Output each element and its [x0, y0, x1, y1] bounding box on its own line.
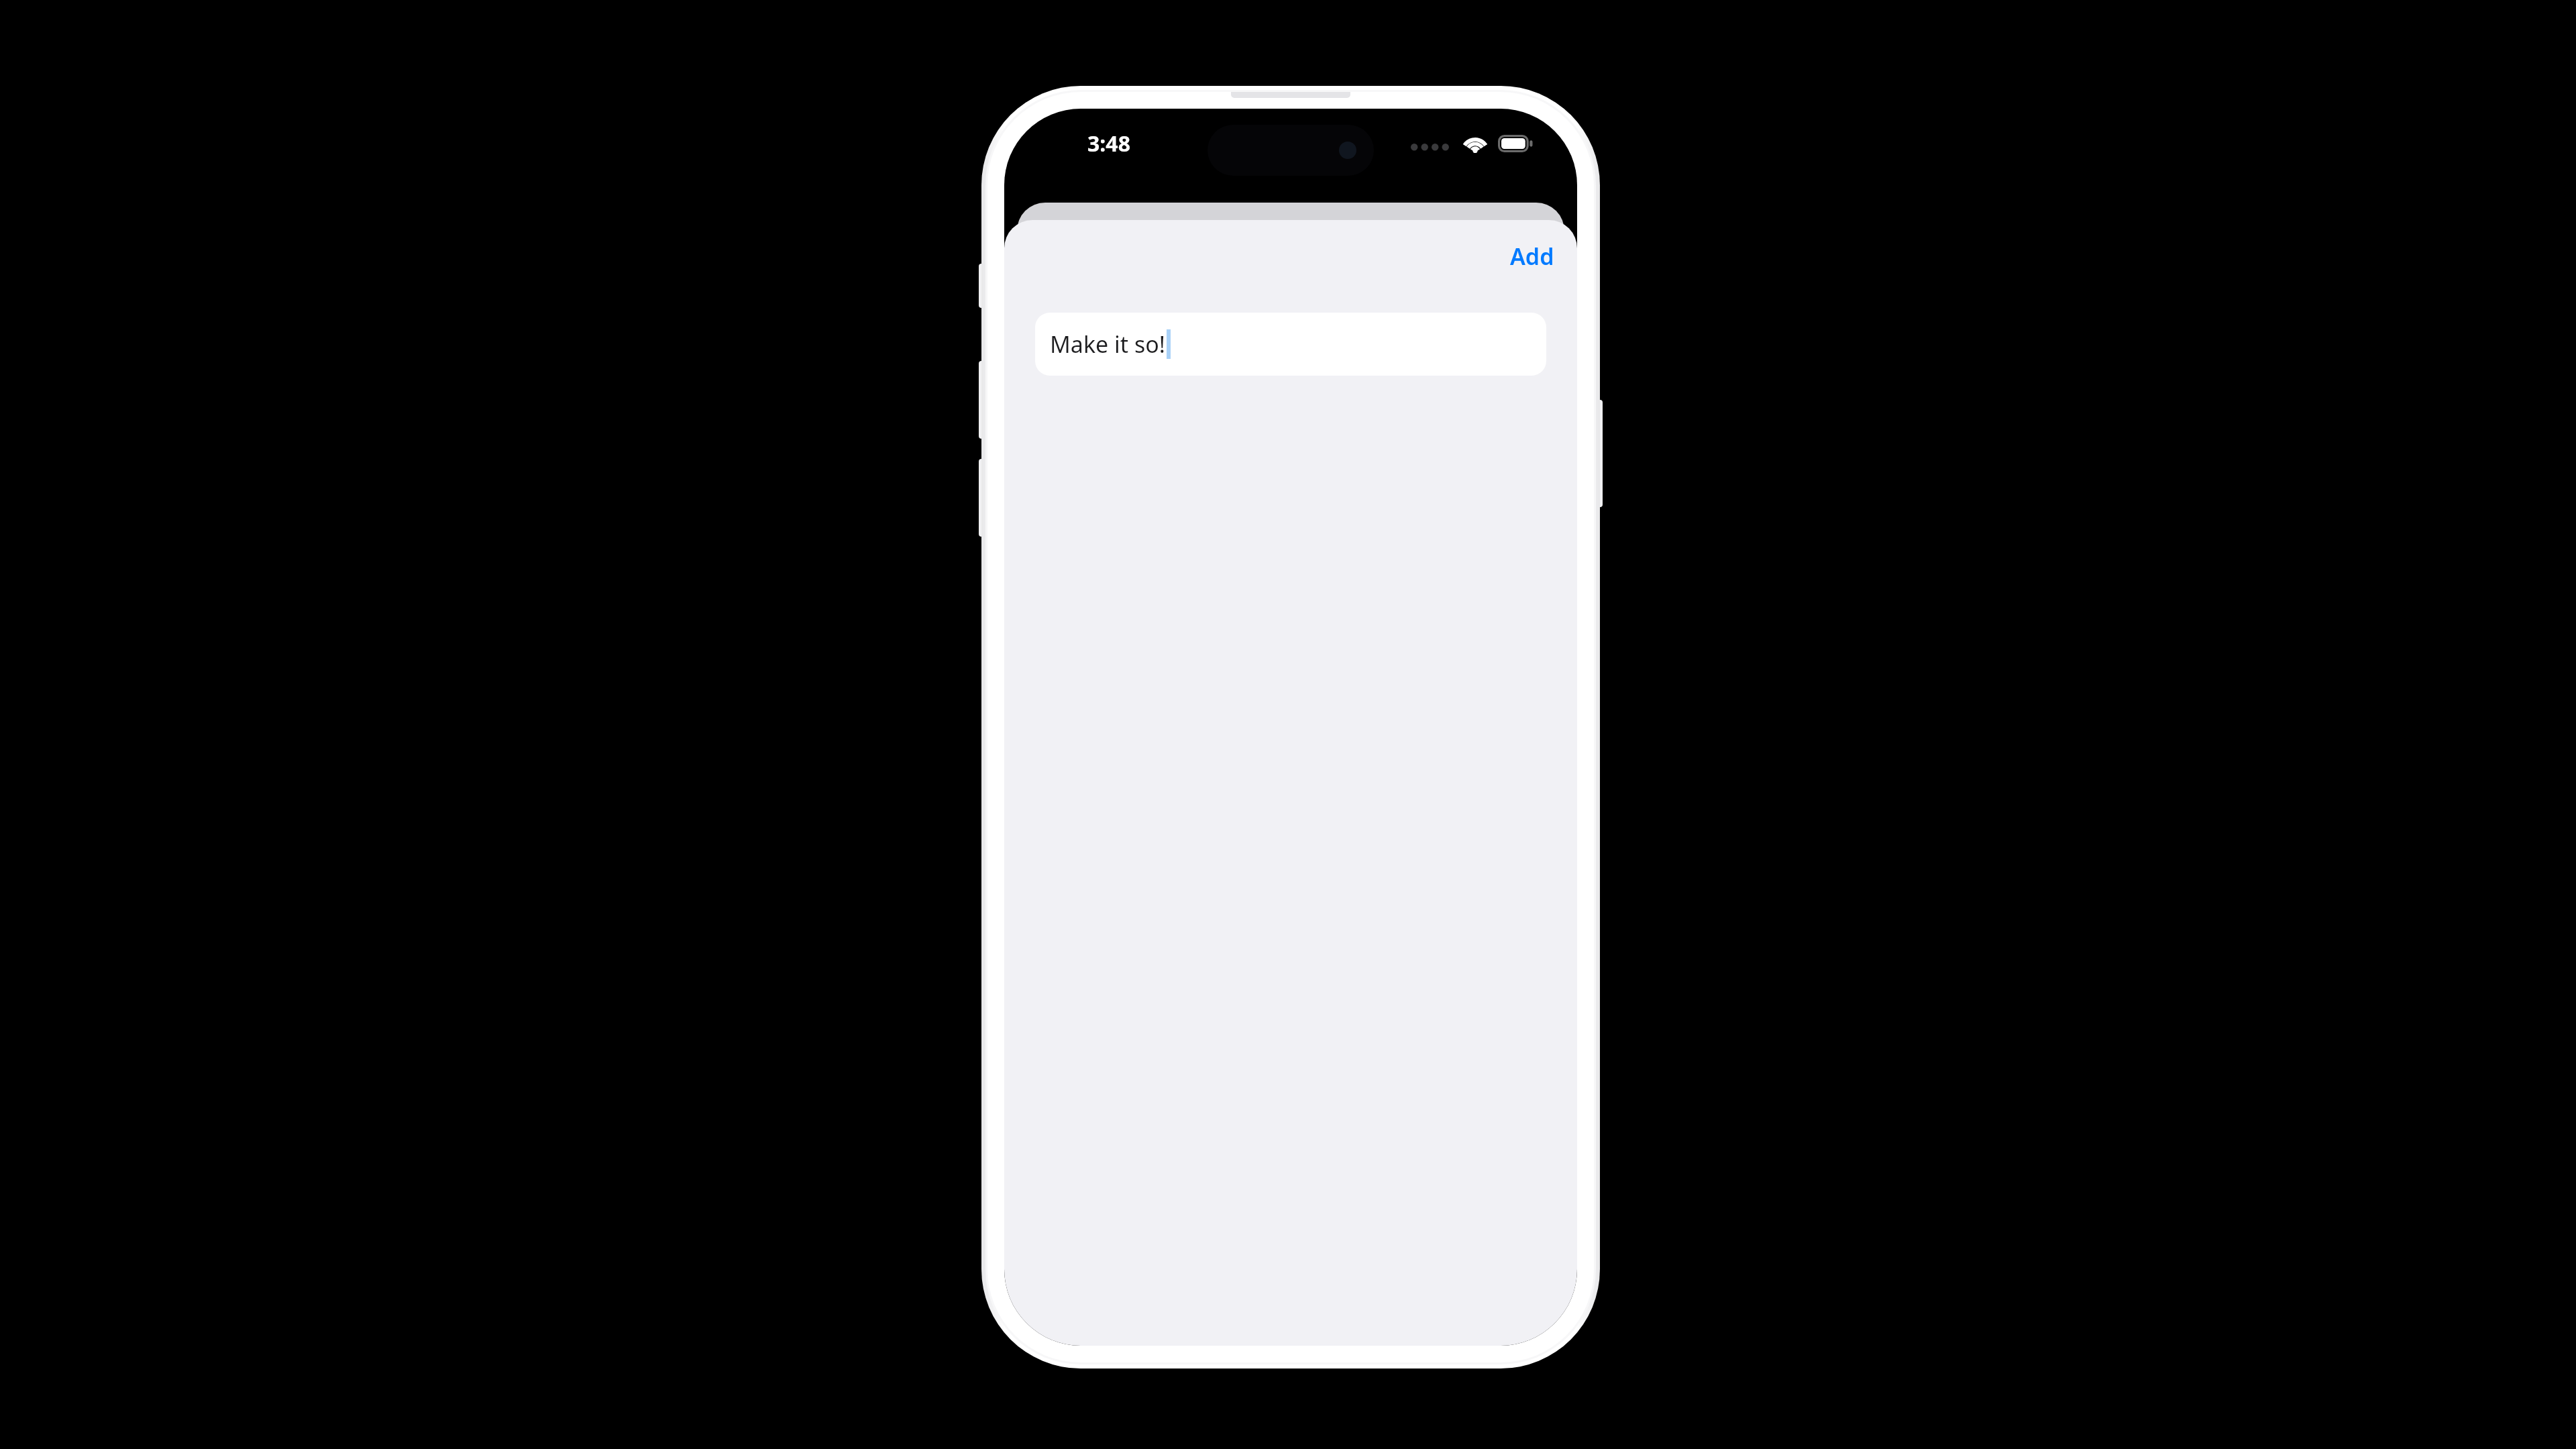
staticText: Make it so!	[1050, 329, 1165, 360]
staticText: 3:48	[1087, 129, 1130, 158]
button[interactable]: Add	[1502, 234, 1562, 278]
staticText: Add	[1510, 241, 1554, 272]
button[interactable]: Make it so!	[1035, 313, 1546, 376]
